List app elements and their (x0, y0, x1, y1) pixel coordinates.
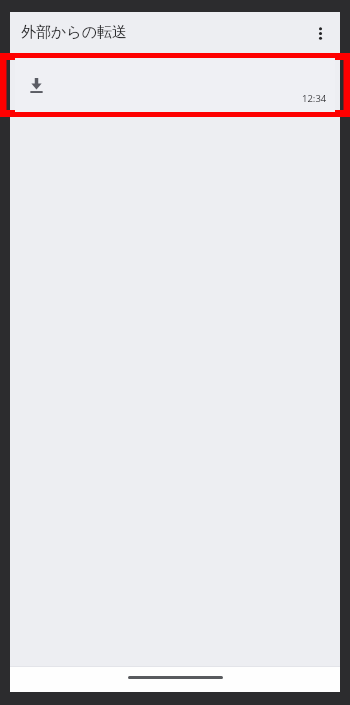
button[interactable]: Home gesture handle (128, 676, 223, 679)
staticText: 外部からの転送 (21, 23, 128, 42)
staticText: 12:34 (302, 92, 327, 105)
button[interactable]: More options (303, 16, 337, 50)
button[interactable]: XXXXXXX (15, 58, 335, 112)
